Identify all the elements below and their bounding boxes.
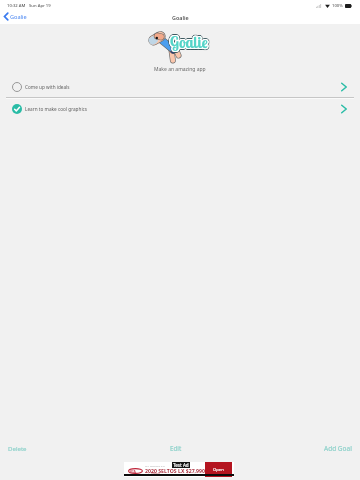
staticText: KIA MOTORS INC xyxy=(145,464,165,467)
staticText: 100% xyxy=(332,3,343,9)
button[interactable]: Goalie xyxy=(3,12,27,21)
staticText: Edit xyxy=(170,444,182,453)
staticText: Goalie xyxy=(10,13,27,21)
staticText: Goalie xyxy=(169,34,207,53)
staticText: 10:32 AM xyxy=(7,3,26,9)
staticText: Test Ad xyxy=(173,462,189,468)
staticText: Goalie xyxy=(172,14,189,21)
staticText: Delete xyxy=(8,444,27,452)
button[interactable]: Add Goal xyxy=(324,444,352,453)
staticText: Goalie xyxy=(171,34,209,53)
button[interactable]: Come up with ideals xyxy=(0,76,360,97)
staticText: Goalie xyxy=(169,35,207,54)
button[interactable]: Open xyxy=(205,462,232,477)
staticText: Goalie xyxy=(169,33,207,52)
staticText: Goalie xyxy=(169,34,207,53)
staticText: Add Goal xyxy=(324,444,352,453)
staticText: Goalie xyxy=(170,32,208,51)
staticText: Learn to make cool graphics xyxy=(25,106,88,112)
staticText: Goalie xyxy=(171,33,209,52)
staticText: Goalie xyxy=(170,33,208,52)
staticText: Sun Apr 19 xyxy=(29,3,51,9)
staticText: Goalie xyxy=(171,31,209,50)
staticText: Open xyxy=(213,467,224,473)
button[interactable]: KIA xyxy=(124,462,234,477)
staticText: Goalie xyxy=(169,32,207,51)
staticText: Make an amazing app xyxy=(154,66,206,73)
staticText: Goalie xyxy=(168,34,206,53)
staticText: Goalie xyxy=(168,32,206,51)
staticText: Goalie xyxy=(169,33,207,52)
staticText: Goalie xyxy=(170,31,208,50)
staticText: Goalie xyxy=(171,32,209,51)
staticText: Goalie xyxy=(168,33,206,52)
staticText: Goalie xyxy=(170,34,208,53)
staticText: Goalie xyxy=(171,35,209,54)
staticText: Come up with ideals xyxy=(25,84,70,90)
button[interactable]: Learn to make cool graphics xyxy=(0,98,360,119)
staticText: Goalie xyxy=(172,34,210,53)
staticText: Goalie xyxy=(171,32,209,51)
staticText: + Offers xyxy=(148,472,160,476)
staticText: Goalie xyxy=(170,35,208,54)
staticText: Goalie xyxy=(172,33,210,52)
staticText: Goalie xyxy=(171,34,209,53)
staticText: Goalie xyxy=(171,33,209,52)
staticText: Goalie xyxy=(170,32,208,51)
staticText: Goalie xyxy=(170,34,208,53)
staticText: Goalie xyxy=(169,32,207,51)
staticText: 2020 SELTOS LX $27,990 xyxy=(145,467,205,474)
staticText: Goalie xyxy=(172,32,210,51)
button[interactable]: Delete xyxy=(8,444,27,452)
staticText: Goalie xyxy=(169,33,207,52)
staticText: Goalie xyxy=(171,33,209,52)
staticText: KIA xyxy=(130,469,136,474)
staticText: Goalie xyxy=(169,31,207,50)
button[interactable]: Edit xyxy=(170,444,182,453)
